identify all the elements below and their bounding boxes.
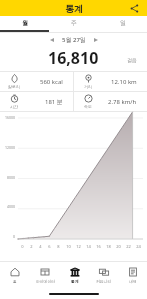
staticText: 걸음 [127, 57, 137, 63]
staticText: 0 [21, 244, 24, 249]
staticText: 560 kcal [40, 78, 63, 86]
staticText: 칼로리 [8, 84, 20, 89]
staticText: 시간 [10, 104, 18, 109]
button[interactable]: 칼로리 [0, 72, 73, 91]
button[interactable]: Previous day [46, 34, 58, 46]
staticText: 20 [116, 244, 121, 249]
staticText: 5월 27일 [62, 36, 86, 44]
button[interactable]: 월 [0, 16, 49, 30]
staticText: 홈 [13, 279, 17, 284]
staticText: 2 [30, 244, 33, 249]
staticText: 커뮤니티 [96, 279, 112, 284]
staticText: 속도 [84, 104, 92, 109]
staticText: 12.10 km [111, 78, 137, 86]
button[interactable]: Share [127, 1, 141, 15]
button[interactable]: 속도 [74, 92, 147, 111]
staticText: 월 [22, 19, 28, 27]
staticText: 8 [57, 244, 60, 249]
staticText: 8000 [7, 175, 16, 180]
button[interactable]: 내역 [118, 262, 147, 288]
staticText: 통계 [65, 3, 83, 14]
staticText: 18 [106, 244, 111, 249]
staticText: 4 [39, 244, 42, 249]
staticText: 12000 [5, 145, 16, 150]
button[interactable]: 일 [98, 16, 147, 30]
button[interactable]: 커뮤니티 [89, 262, 118, 288]
staticText: 2.78 km/h [108, 98, 137, 106]
staticText: 내역 [129, 279, 137, 284]
staticText: 16,810 [48, 47, 99, 67]
staticText: 12 [76, 244, 81, 249]
button[interactable]: 주 [49, 16, 98, 30]
staticText: 14 [86, 244, 91, 249]
button[interactable]: 통계 [60, 262, 89, 288]
staticText: 6 [48, 244, 51, 249]
staticText: 24 [136, 244, 141, 249]
button[interactable]: 홈 [0, 262, 30, 288]
button[interactable]: 거리 [74, 72, 147, 91]
staticText: 16000 [5, 115, 16, 120]
staticText: 22 [126, 244, 131, 249]
staticText: 주 [71, 19, 77, 27]
staticText: 181 분 [45, 98, 63, 106]
staticText: 0 [13, 234, 16, 239]
staticText: 마이데이터 [36, 279, 55, 284]
staticText: 16 [96, 244, 101, 249]
staticText: 4000 [7, 204, 16, 209]
staticText: 통계 [71, 279, 79, 284]
staticText: 거리 [84, 84, 92, 89]
staticText: 10 [66, 244, 71, 249]
button[interactable]: Next day [90, 34, 102, 46]
staticText: 일 [120, 19, 126, 27]
button[interactable]: 시간 [0, 92, 73, 111]
button[interactable]: 마이데이터 [30, 262, 60, 288]
